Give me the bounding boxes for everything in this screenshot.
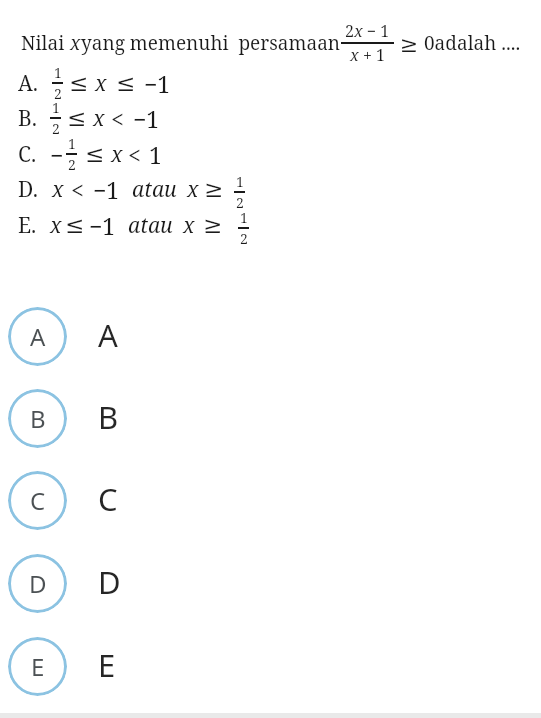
button[interactable]: E xyxy=(0,637,541,718)
staticText: x + 1 xyxy=(350,44,385,66)
button[interactable]: C xyxy=(0,471,541,554)
staticText: B. xyxy=(18,104,37,133)
staticText: yang memenuhi persamaan xyxy=(81,30,341,56)
staticText: x xyxy=(187,175,199,204)
staticText: A. xyxy=(18,69,39,98)
staticText: 2 xyxy=(240,229,248,248)
staticText: ≥ xyxy=(394,28,424,58)
staticText: x xyxy=(95,69,107,98)
staticText: 1 xyxy=(54,63,62,82)
staticText: 1 xyxy=(68,134,76,153)
staticText: −1 xyxy=(133,103,160,134)
staticText: A xyxy=(98,314,118,356)
staticText: B xyxy=(30,402,46,435)
button[interactable]: D xyxy=(0,554,541,637)
staticText: x xyxy=(52,175,64,204)
staticText: D xyxy=(98,561,121,603)
button[interactable]: B xyxy=(0,389,541,471)
staticText: 2 xyxy=(54,84,62,103)
button[interactable]: A xyxy=(0,307,541,389)
staticText: x xyxy=(111,140,123,169)
staticText: 2 xyxy=(52,119,60,138)
staticText: ≤ xyxy=(67,105,87,132)
staticText: −1 xyxy=(144,68,171,99)
staticText: < xyxy=(128,139,141,170)
staticText: D. xyxy=(18,175,39,204)
staticText: < xyxy=(71,174,84,205)
staticText: E xyxy=(98,644,116,686)
staticText: x xyxy=(183,211,195,240)
staticText: C. xyxy=(18,140,37,169)
staticText: < xyxy=(111,103,124,134)
staticText: 0adalah .... xyxy=(424,30,521,56)
staticText: ≥ xyxy=(204,176,224,203)
staticText: ≥ xyxy=(203,212,223,239)
staticText: 1 xyxy=(52,98,60,117)
staticText: B xyxy=(98,396,119,438)
staticText: atau xyxy=(128,211,173,240)
staticText: 2x − 1 xyxy=(345,20,390,42)
staticText: x xyxy=(50,211,62,240)
staticText: 1 xyxy=(240,208,248,227)
staticText: A xyxy=(30,320,46,353)
staticText: Nilai xyxy=(21,30,70,56)
staticText: atau xyxy=(132,175,177,204)
staticText: 1 xyxy=(149,139,162,170)
staticText: ≤ xyxy=(85,141,105,168)
staticText: ≤ xyxy=(65,212,85,239)
staticText: D xyxy=(29,567,47,600)
staticText: x xyxy=(70,30,81,56)
staticText: −1 xyxy=(93,174,120,205)
staticText: E xyxy=(31,650,45,683)
staticText: 1 xyxy=(236,172,244,191)
staticText: − xyxy=(50,139,64,170)
staticText: E. xyxy=(18,211,37,240)
staticText: x xyxy=(93,104,105,133)
staticText: 2 xyxy=(236,193,244,212)
staticText: ≤ xyxy=(116,70,136,97)
staticText: C xyxy=(98,478,118,520)
staticText: ≤ xyxy=(69,70,89,97)
staticText: 2 xyxy=(68,155,76,174)
staticText: C xyxy=(30,484,46,517)
staticText: −1 xyxy=(89,210,116,241)
